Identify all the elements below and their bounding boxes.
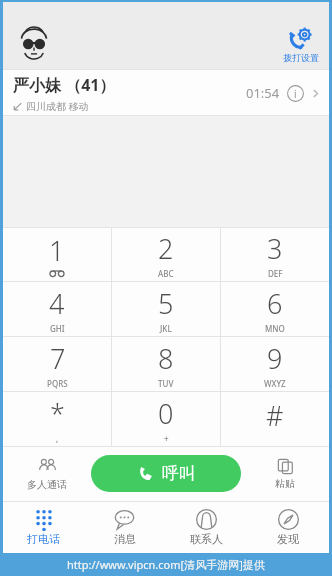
- staticText: MNO: [265, 323, 285, 334]
- staticText: 打电话: [27, 532, 60, 546]
- button[interactable]: 拨打设置: [283, 26, 319, 63]
- staticText: 2: [158, 230, 174, 267]
- staticText: JKL: [160, 323, 172, 334]
- staticText: PQRS: [47, 378, 68, 389]
- button[interactable]: 9: [220, 337, 329, 391]
- staticText: 9: [267, 340, 283, 377]
- button[interactable]: 8: [111, 337, 220, 391]
- staticText: 0: [158, 395, 174, 432]
- staticText: GHI: [50, 323, 65, 334]
- staticText: 粘贴: [275, 477, 295, 490]
- staticText: 8: [158, 340, 174, 377]
- button[interactable]: 3: [220, 228, 329, 281]
- staticText: 消息: [114, 532, 136, 546]
- button[interactable]: 严小妹 （41）: [3, 70, 329, 116]
- button[interactable]: 消息: [84, 501, 165, 553]
- button[interactable]: #: [220, 392, 329, 446]
- button[interactable]: 多人通话: [3, 446, 91, 501]
- staticText: 5: [158, 285, 174, 322]
- staticText: ABC: [158, 268, 174, 279]
- button[interactable]: Profile avatar: [17, 27, 51, 61]
- staticText: 严小妹 （41）: [13, 74, 116, 96]
- staticText: 四川成都 移动: [26, 99, 89, 113]
- staticText: 1: [49, 232, 65, 269]
- button[interactable]: 7: [3, 337, 111, 391]
- button[interactable]: 粘贴: [241, 446, 329, 501]
- staticText: 拨打设置: [283, 52, 319, 63]
- button[interactable]: 呼叫: [91, 455, 241, 492]
- staticText: ,: [56, 433, 59, 444]
- staticText: 3: [267, 230, 283, 267]
- staticText: WXYZ: [264, 378, 286, 389]
- staticText: 多人通话: [27, 478, 67, 491]
- button[interactable]: *: [3, 392, 111, 446]
- staticText: +: [164, 433, 169, 444]
- button[interactable]: 5: [111, 282, 220, 336]
- staticText: DEF: [268, 268, 283, 279]
- staticText: TUV: [158, 378, 174, 389]
- button[interactable]: 6: [220, 282, 329, 336]
- button[interactable]: 0: [111, 392, 220, 446]
- button[interactable]: 1: [3, 228, 111, 281]
- staticText: 01:54: [246, 84, 280, 102]
- staticText: 6: [267, 285, 283, 322]
- button[interactable]: 2: [111, 228, 220, 281]
- staticText: 4: [49, 285, 65, 322]
- button[interactable]: 4: [3, 282, 111, 336]
- button[interactable]: Call details: [287, 85, 304, 102]
- staticText: 7: [50, 340, 66, 377]
- staticText: 呼叫: [162, 463, 196, 484]
- staticText: #: [266, 397, 284, 434]
- button[interactable]: 联系人: [165, 501, 247, 553]
- staticText: 发现: [277, 532, 299, 546]
- button[interactable]: 发现: [247, 501, 329, 553]
- staticText: http://www.vipcn.com[清风手游网]提供: [67, 557, 265, 572]
- staticText: i: [294, 87, 297, 101]
- staticText: *: [50, 395, 65, 432]
- staticText: 联系人: [190, 532, 223, 546]
- button[interactable]: 打电话: [3, 501, 84, 553]
